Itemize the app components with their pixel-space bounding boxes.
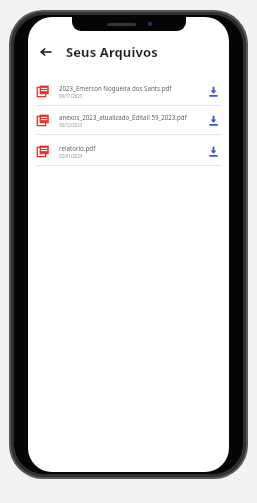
button[interactable]: Download [205, 143, 221, 159]
button[interactable]: 2023_Emerson Nogueira dos Sants.pdf [28, 77, 229, 105]
button[interactable]: relatorio.pdf [28, 137, 229, 165]
button[interactable]: Download [205, 112, 221, 128]
staticText: 09/11/2023 [59, 93, 83, 99]
staticText: anexos_2023_atualizado_Editall 59_2023.p… [59, 113, 187, 121]
staticText: relatorio.pdf [59, 144, 96, 152]
staticText: 2023_Emerson Nogueira dos Sants.pdf [59, 84, 172, 92]
staticText: Seus Arquivos [66, 43, 158, 61]
staticText: 02/01/2024 [59, 153, 83, 159]
button[interactable]: Back [36, 42, 56, 62]
button[interactable]: anexos_2023_atualizado_Editall 59_2023.p… [28, 106, 229, 134]
button[interactable]: Download [205, 83, 221, 99]
staticText: 30/12/2023 [59, 122, 83, 128]
